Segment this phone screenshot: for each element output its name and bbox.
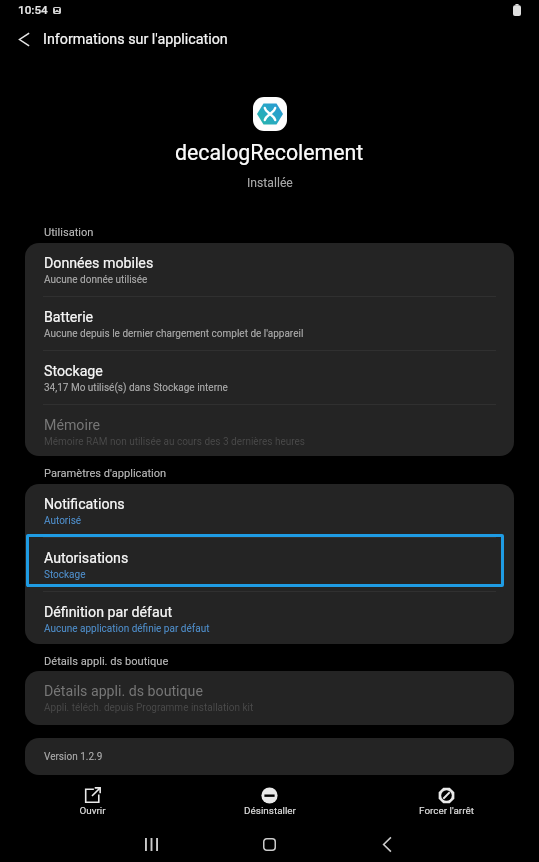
staticText: Installée bbox=[247, 176, 293, 190]
button[interactable]: Définition par défaut bbox=[25, 592, 514, 644]
button[interactable]: Batterie bbox=[25, 297, 514, 350]
staticText: Mémoire RAM non utilisée au cours des 3 … bbox=[44, 436, 305, 448]
button[interactable]: Stockage bbox=[25, 351, 514, 404]
staticText: Définition par défaut bbox=[44, 604, 173, 621]
staticText: Données mobiles bbox=[44, 255, 154, 272]
button[interactable]: Détails appli. ds boutique bbox=[25, 671, 514, 724]
staticText: Utilisation bbox=[44, 226, 94, 239]
button[interactable]: Applications récentes bbox=[121, 826, 181, 862]
button[interactable]: Ouvrir bbox=[4, 780, 181, 826]
button[interactable]: Autorisations bbox=[25, 538, 514, 591]
staticText: decalogRecolement bbox=[175, 140, 364, 165]
staticText: Désinstaller bbox=[244, 805, 296, 817]
staticText: Forcer l'arrêt bbox=[419, 805, 474, 817]
staticText: Version 1.2.9 bbox=[44, 751, 103, 763]
button[interactable]: Mémoire bbox=[25, 405, 514, 456]
staticText: Aucune depuis le dernier chargement comp… bbox=[44, 328, 304, 340]
button[interactable]: Accueil bbox=[239, 826, 299, 862]
button[interactable]: Forcer l'arrêt bbox=[358, 780, 535, 826]
staticText: Notifications bbox=[44, 496, 125, 513]
staticText: Ouvrir bbox=[79, 805, 106, 817]
staticText: Détails appli. ds boutique bbox=[44, 683, 203, 700]
staticText: Aucune donnée utilisée bbox=[44, 274, 148, 286]
staticText: Autorisé bbox=[44, 515, 82, 527]
staticText: Appli. téléch. depuis Programme installa… bbox=[44, 702, 254, 714]
staticText: Batterie bbox=[44, 309, 94, 326]
staticText: Aucune application définie par défaut bbox=[44, 623, 210, 635]
staticText: Stockage bbox=[44, 363, 103, 380]
staticText: 34,17 Mo utilisé(s) dans Stockage intern… bbox=[44, 382, 228, 394]
staticText: Informations sur l'application bbox=[43, 31, 228, 48]
staticText: Paramètres d'application bbox=[44, 467, 167, 480]
staticText: Stockage bbox=[44, 569, 86, 581]
button[interactable]: Désinstaller bbox=[181, 780, 358, 826]
staticText: 10:54 bbox=[18, 3, 48, 17]
staticText: Mémoire bbox=[44, 417, 101, 434]
button[interactable]: Notifications bbox=[25, 484, 514, 537]
staticText: Autorisations bbox=[44, 550, 129, 567]
button[interactable]: Retour bbox=[5, 22, 43, 56]
button[interactable]: Retour bbox=[357, 826, 417, 862]
button[interactable]: Version 1.2.9 bbox=[25, 738, 514, 775]
button[interactable]: Données mobiles bbox=[25, 243, 514, 296]
staticText: Détails appli. ds boutique bbox=[44, 655, 169, 668]
